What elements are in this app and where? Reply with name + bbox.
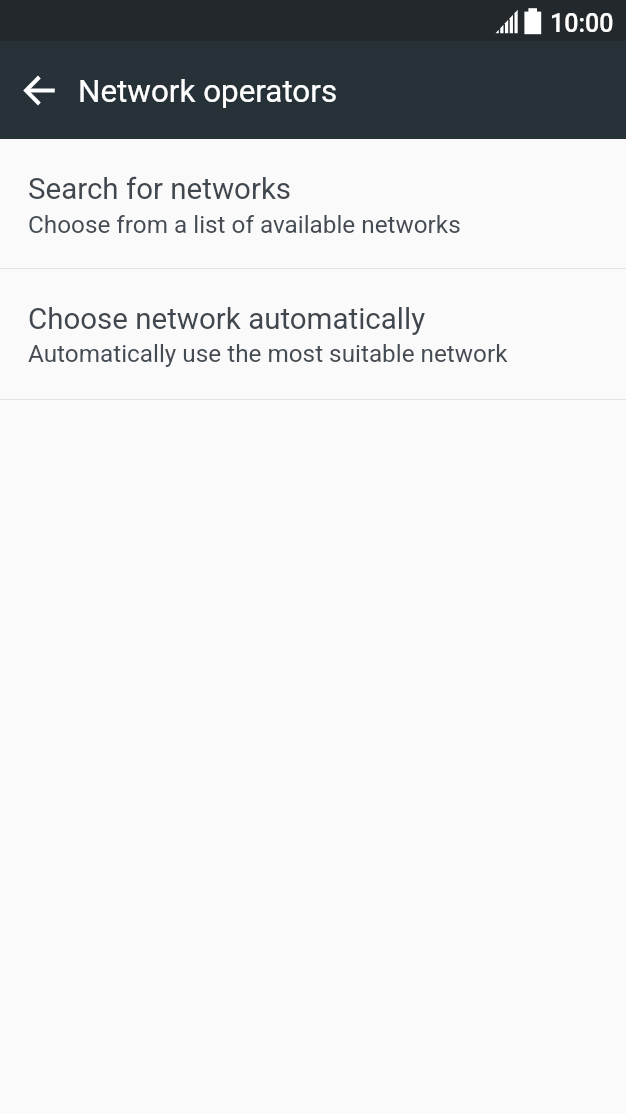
button[interactable]: Search for networks xyxy=(0,139,626,268)
staticText: Choose from a list of available networks xyxy=(28,210,461,238)
staticText: Choose network automatically xyxy=(28,302,426,337)
staticText: Automatically use the most suitable netw… xyxy=(28,339,508,367)
staticText: Search for networks xyxy=(28,172,292,207)
staticText: Network operators xyxy=(78,73,338,110)
staticText: 10:00 xyxy=(550,9,614,38)
button[interactable]: Navigate up xyxy=(10,61,68,119)
button[interactable]: Choose network automatically xyxy=(0,269,626,399)
